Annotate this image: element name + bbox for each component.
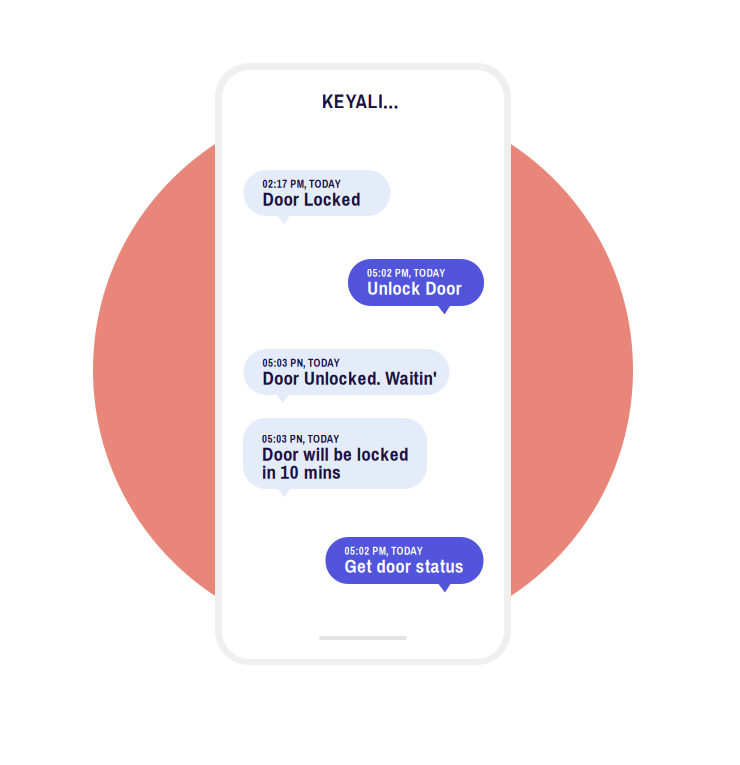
button[interactable]: 05:03 PN, TODAY [243, 418, 427, 498]
staticText: Unlock Door [367, 275, 461, 301]
button[interactable]: 05:03 PN, TODAY [243, 349, 449, 404]
button[interactable]: 05:02 PM, TODAY [348, 259, 484, 315]
staticText: 05:02 PM, TODAY [344, 544, 423, 558]
button[interactable]: 02:17 PM, TODAY [243, 170, 390, 225]
staticText: Door will be locked [262, 441, 408, 467]
staticText: Door Locked [262, 186, 360, 212]
staticText: 05:03 PN, TODAY [262, 432, 339, 446]
staticText: in 10 mins [262, 459, 341, 485]
staticText: Door Unlocked. Waitin' [262, 365, 437, 391]
staticText: 05:03 PN, TODAY [262, 356, 340, 370]
button[interactable]: 05:02 PM, TODAY [325, 537, 483, 593]
staticText: 05:02 PM, TODAY [367, 266, 445, 280]
staticText: Get door status [344, 553, 464, 579]
staticText: 02:17 PM, TODAY [262, 177, 341, 191]
staticText: KEYALIKE [322, 88, 406, 114]
